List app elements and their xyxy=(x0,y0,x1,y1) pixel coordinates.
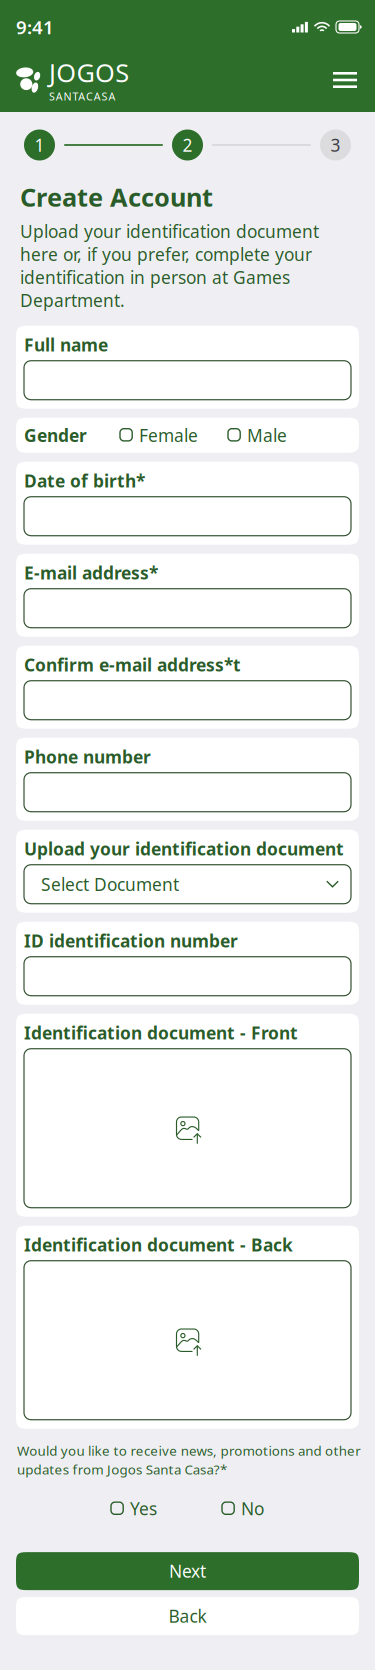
staticText: 1 xyxy=(34,133,44,156)
staticText: Full name xyxy=(24,333,108,356)
staticText: 3 xyxy=(330,133,340,156)
button[interactable]: No xyxy=(222,1497,264,1520)
staticText: Create Account xyxy=(20,180,213,214)
staticText: Would you like to receive news, promotio… xyxy=(17,1442,361,1459)
button[interactable]: Yes xyxy=(111,1497,157,1520)
staticText: E-mail address* xyxy=(24,561,158,584)
staticText: Phone number xyxy=(24,745,151,768)
staticText: Upload your identification document xyxy=(24,837,344,860)
staticText: Select Document xyxy=(41,873,179,896)
button[interactable]: Female xyxy=(120,424,198,447)
staticText: updates from Jogos Santa Casa?* xyxy=(17,1460,227,1478)
button[interactable]: Male xyxy=(228,424,287,447)
staticText: Gender xyxy=(24,424,87,447)
staticText: Yes xyxy=(130,1497,157,1520)
staticText: Next xyxy=(169,1560,206,1583)
staticText: No xyxy=(241,1497,264,1520)
staticText: JOGOS xyxy=(49,56,129,89)
staticText: Date of birth* xyxy=(24,469,145,492)
staticText: 9:41 xyxy=(16,15,54,39)
staticText: Female xyxy=(139,424,198,447)
button[interactable]: Menu xyxy=(331,64,359,96)
staticText: Confirm e-mail address*t xyxy=(24,653,241,676)
staticText: ID identification number xyxy=(24,929,238,952)
staticText: SANTACASA xyxy=(49,89,115,103)
button[interactable]: Select Document xyxy=(24,865,351,904)
staticText: 2 xyxy=(182,133,192,156)
staticText: Back xyxy=(168,1605,206,1628)
button[interactable]: Next xyxy=(16,1552,359,1590)
staticText: Upload your identification document here… xyxy=(20,220,319,312)
staticText: Identification document - Back xyxy=(24,1233,293,1256)
button[interactable]: Upload Identification document - Front xyxy=(24,1049,351,1208)
staticText: Identification document - Front xyxy=(24,1021,298,1044)
staticText: Male xyxy=(247,424,287,447)
button[interactable]: Upload Identification document - Back xyxy=(24,1261,351,1420)
button[interactable]: Back xyxy=(16,1597,359,1635)
